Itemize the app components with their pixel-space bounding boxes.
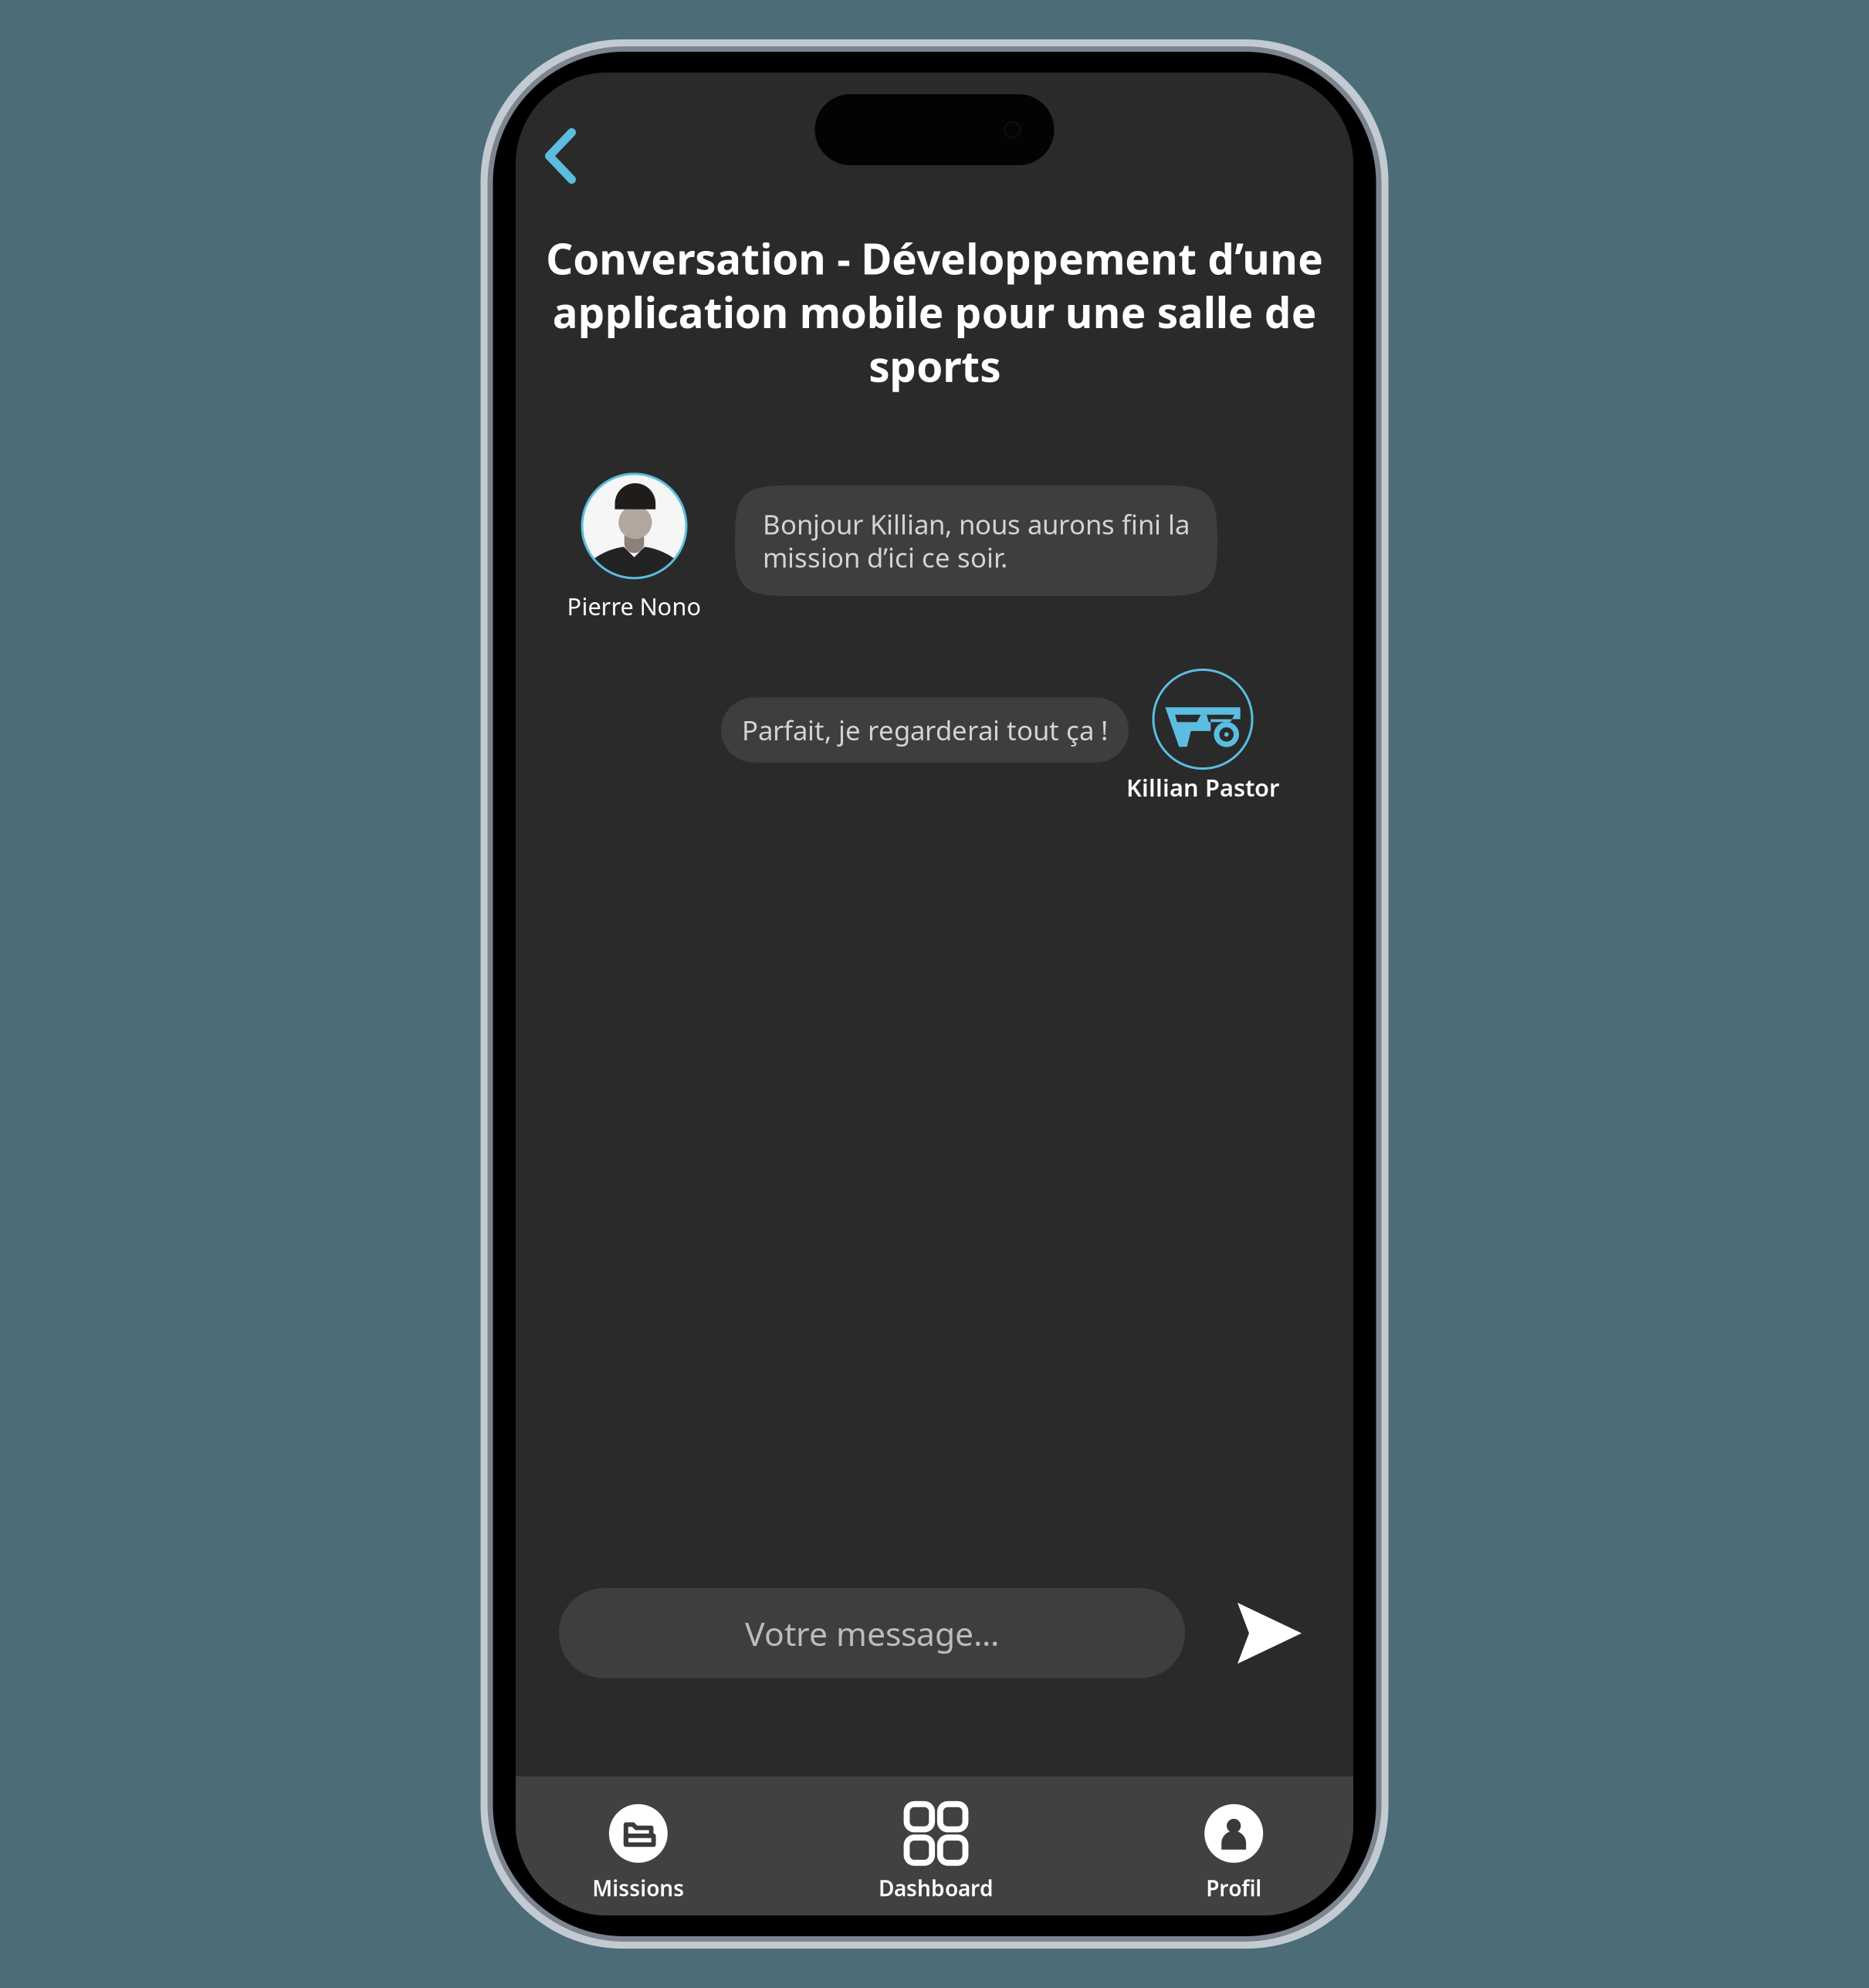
staticText: Killian Pastor <box>1126 772 1279 803</box>
button[interactable]: Profil <box>1186 1799 1282 1907</box>
staticText: Pierre Nono <box>567 590 701 622</box>
staticText: Parfait, je regarderai tout ça ! <box>742 712 1108 748</box>
button[interactable]: Back <box>516 116 594 196</box>
staticText: Profil <box>1206 1874 1262 1902</box>
staticText: Dashboard <box>879 1874 994 1902</box>
staticText: Bonjour Killian, nous aurons fini la mis… <box>763 506 1190 575</box>
staticText: Votre message... <box>745 1611 999 1655</box>
staticText: Conversation - Développement d’une appli… <box>546 230 1323 394</box>
button[interactable]: Send <box>1185 1589 1319 1678</box>
button[interactable]: Dashboard <box>860 1799 1012 1907</box>
staticText: Missions <box>592 1874 684 1902</box>
button[interactable]: Missions <box>574 1799 703 1907</box>
